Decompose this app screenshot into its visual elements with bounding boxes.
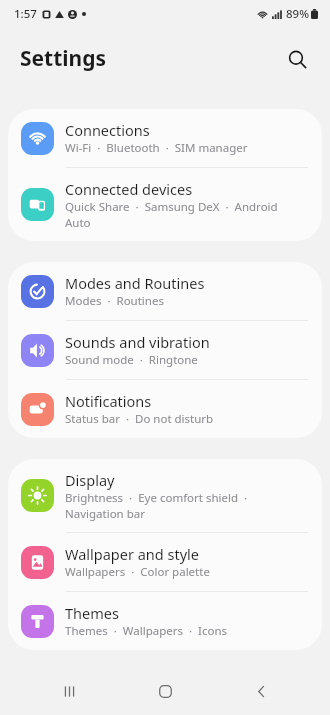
button[interactable]: Search — [275, 37, 319, 81]
staticText: 1:57 — [14, 6, 37, 22]
button[interactable]: Connections — [8, 109, 322, 167]
staticText: Connections — [65, 120, 150, 140]
button[interactable]: Sounds and vibration — [8, 321, 322, 379]
button[interactable]: Modes and Routines — [8, 262, 322, 320]
staticText: Themes · Wallpapers · Icons — [65, 623, 227, 639]
button[interactable]: Wallpaper and style — [8, 533, 322, 591]
staticText: Display — [65, 470, 115, 490]
button[interactable]: Display — [8, 459, 322, 532]
staticText: Sound mode · Ringtone — [65, 352, 198, 368]
button[interactable]: Connected devices — [8, 168, 322, 241]
staticText: Settings — [20, 44, 107, 73]
staticText: Wallpaper and style — [65, 544, 199, 564]
staticText: Modes · Routines — [65, 293, 164, 309]
staticText: Themes — [65, 603, 119, 623]
staticText: Quick Share · Samsung DeX · Android Auto — [65, 199, 306, 230]
button[interactable]: Notifications — [8, 380, 322, 438]
button[interactable]: Back — [234, 668, 288, 715]
staticText: Wallpapers · Color palette — [65, 564, 210, 580]
staticText: Sounds and vibration — [65, 332, 210, 352]
button[interactable]: Home — [138, 668, 192, 715]
staticText: Brightness · Eye comfort shield · Naviga… — [65, 490, 306, 521]
staticText: Wi-Fi · Bluetooth · SIM manager — [65, 140, 248, 156]
button[interactable]: Recent apps — [42, 668, 96, 715]
staticText: Connected devices — [65, 179, 193, 199]
staticText: 89% — [286, 6, 309, 22]
staticText: Notifications — [65, 391, 152, 411]
staticText: Modes and Routines — [65, 273, 205, 293]
button[interactable]: Themes — [8, 592, 322, 650]
staticText: Status bar · Do not disturb — [65, 411, 214, 427]
